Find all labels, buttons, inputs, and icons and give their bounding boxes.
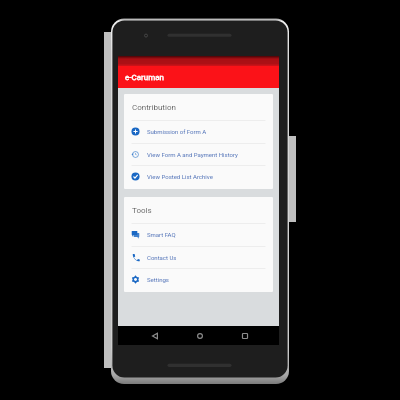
staticText: e-Caruman — [125, 73, 164, 82]
button[interactable]: Recent apps — [226, 326, 263, 345]
button[interactable]: Back — [136, 326, 173, 345]
staticText: Contribution — [132, 103, 176, 112]
button[interactable]: Submission of Form A — [124, 120, 273, 143]
button[interactable]: View Posted List Archive — [124, 165, 273, 188]
staticText: Smart FAQ — [147, 231, 176, 238]
staticText: Submission of Form A — [147, 128, 207, 135]
staticText: Contact Us — [147, 254, 177, 261]
button[interactable]: Smart FAQ — [124, 223, 273, 246]
staticText: View Form A and Payment History — [147, 151, 238, 158]
button[interactable]: View Form A and Payment History — [124, 143, 273, 166]
button[interactable]: Settings — [124, 268, 273, 291]
button[interactable]: Contact Us — [124, 246, 273, 269]
button[interactable]: e-Caruman — [118, 66, 279, 88]
staticText: Settings — [147, 276, 169, 283]
staticText: View Posted List Archive — [147, 173, 213, 180]
button[interactable]: Home — [181, 326, 218, 345]
staticText: Tools — [132, 206, 152, 215]
